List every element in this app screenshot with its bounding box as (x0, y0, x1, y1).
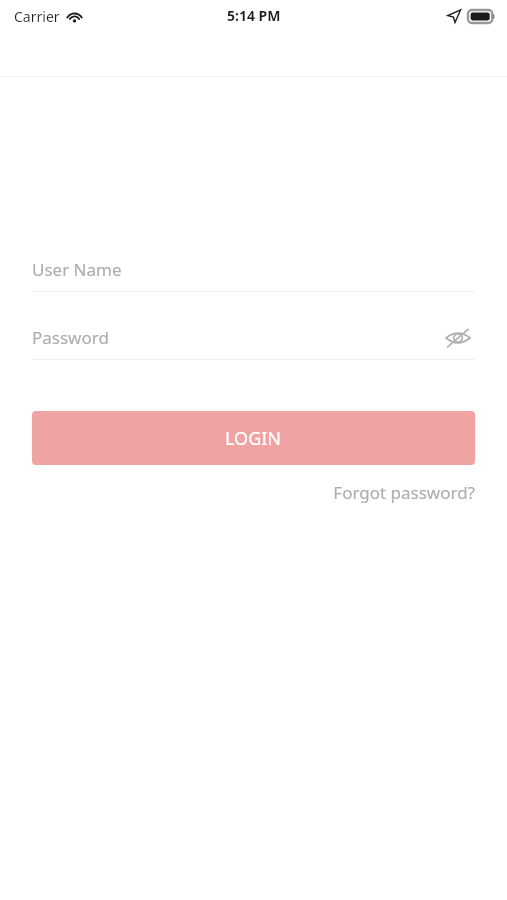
staticText: 5:14 PM (227, 6, 281, 25)
staticText: User Name (32, 258, 122, 281)
staticText: Forgot password? (333, 481, 475, 504)
button[interactable]: Forgot password? (333, 477, 475, 508)
staticText: Password (32, 326, 109, 349)
staticText: LOGIN (225, 426, 282, 451)
button[interactable]: Password (32, 316, 475, 359)
button[interactable]: User Name (32, 248, 475, 291)
staticText: Carrier (14, 7, 60, 26)
button[interactable]: LOGIN (32, 411, 475, 465)
button[interactable]: Show password (441, 321, 475, 355)
